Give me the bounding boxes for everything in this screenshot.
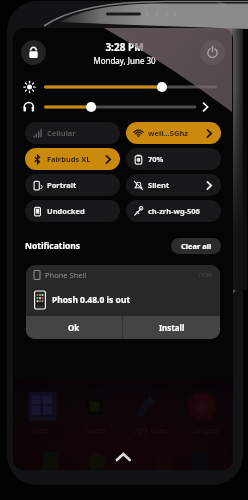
staticText: Light Video [133,426,168,435]
button[interactable]: Volume [13,97,233,117]
button[interactable]: Brightness [13,77,233,97]
staticText: Cellular [47,128,76,138]
button[interactable]: Ok [26,316,122,339]
button[interactable]: Clear all [171,238,221,254]
staticText: Phosh 0.48.0 is out [52,294,131,306]
staticText: well...5Ghz [148,128,188,138]
button[interactable]: 70% [126,148,221,170]
staticText: Undocked [47,206,85,216]
staticText: Fonts [32,426,49,435]
button[interactable]: Install [123,316,220,339]
staticText: Notifications [25,240,81,252]
button[interactable]: well...5Ghz [126,122,221,144]
staticText: Clear all [181,241,212,251]
staticText: Portrait [47,180,77,190]
staticText: Phone Shell [45,270,87,280]
staticText: Install [159,322,185,333]
button[interactable]: Cellular [25,122,120,144]
button[interactable]: Undocked [25,200,120,222]
button[interactable]: Silent [126,174,221,196]
staticText: Monday, June 30 [93,55,156,66]
staticText: Games [85,426,107,435]
staticText: Ok [68,322,80,333]
button[interactable]: Power options [200,40,225,65]
staticText: 3:28 PM [105,40,144,54]
staticText: Fairbuds XL [47,154,91,164]
button[interactable]: ch-zrh-wg-506 [126,200,221,222]
button[interactable]: Lock screen [21,40,46,65]
staticText: 70% [148,154,164,164]
staticText: now [199,270,212,279]
button[interactable]: Fairbuds XL [25,148,120,170]
staticText: Silent [148,180,170,190]
button[interactable]: Portrait [25,174,120,196]
button[interactable]: Phone Shell [26,265,220,339]
staticText: ch-zrh-wg-506 [148,206,200,216]
staticText: Lollypop [193,426,219,435]
